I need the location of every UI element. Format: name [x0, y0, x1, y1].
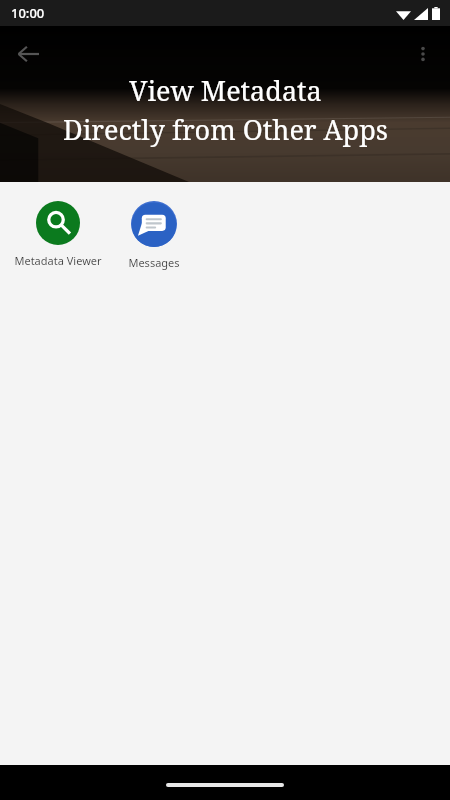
staticText: Metadata Viewer — [14, 253, 102, 268]
staticText: 10:00 — [11, 4, 45, 22]
button[interactable]: Metadata Viewer — [10, 197, 106, 272]
button[interactable]: Back — [6, 32, 50, 76]
staticText: View Metadata — [129, 72, 322, 109]
staticText: Directly from Other Apps — [63, 111, 388, 148]
button[interactable]: Messages — [106, 197, 202, 274]
button[interactable]: More options — [402, 33, 444, 75]
staticText: Messages — [128, 255, 180, 270]
